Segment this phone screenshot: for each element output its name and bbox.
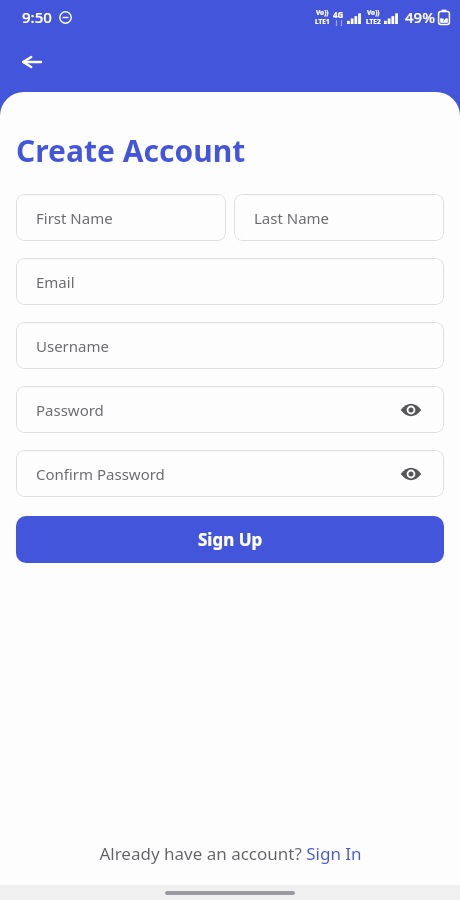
staticText: Email <box>36 272 424 292</box>
button[interactable]: Email <box>16 258 444 305</box>
staticText: 49% <box>405 7 435 27</box>
staticText: Create Account <box>16 130 246 171</box>
button[interactable]: First Name <box>16 194 226 241</box>
staticText: Confirm Password <box>36 464 398 484</box>
button[interactable]: Username <box>16 322 444 369</box>
staticText: Vo)) <box>367 8 380 17</box>
staticText: 4G <box>333 9 344 20</box>
staticText: Vo)) <box>316 8 329 17</box>
staticText: LTE1 <box>315 17 330 26</box>
staticText: 9:50 <box>22 7 52 27</box>
button[interactable]: Password <box>16 386 444 433</box>
staticText: Last Name <box>254 208 424 228</box>
staticText: Sign Up <box>198 528 263 551</box>
staticText: First Name <box>36 208 206 228</box>
button[interactable]: Confirm Password <box>16 450 444 497</box>
staticText: Already have an account? Sign In <box>99 842 362 865</box>
button[interactable]: Toggle password visibility <box>398 461 424 487</box>
button[interactable]: Sign Up <box>16 516 444 563</box>
button[interactable]: Already have an account? Sign In <box>0 832 460 875</box>
button[interactable]: Back <box>12 42 52 82</box>
button[interactable]: Last Name <box>234 194 444 241</box>
button[interactable]: Toggle password visibility <box>398 397 424 423</box>
staticText: Username <box>36 336 424 356</box>
staticText: Password <box>36 400 398 420</box>
staticText: LTE2 <box>366 17 381 26</box>
